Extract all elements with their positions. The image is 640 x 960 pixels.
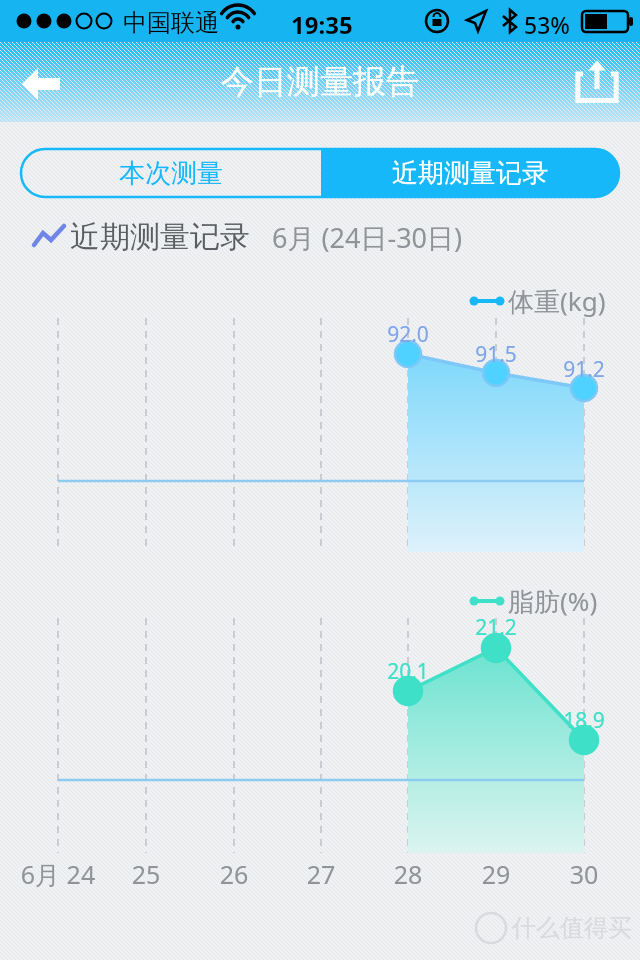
staticText: 91.2: [539, 355, 629, 384]
staticText: 29: [431, 857, 561, 891]
staticText: 体重(kg): [508, 283, 606, 319]
staticText: 91.5: [451, 340, 541, 369]
staticText: 27: [256, 857, 386, 891]
staticText: 28: [343, 857, 473, 891]
staticText: 本次测量: [119, 157, 223, 190]
staticText: 今日测量报告: [221, 61, 419, 103]
staticText: 近期测量记录: [392, 157, 548, 190]
button[interactable]: Back: [14, 56, 70, 112]
staticText: 中国联通: [123, 8, 219, 38]
button[interactable]: Share: [568, 53, 626, 111]
staticText: 53%: [524, 9, 570, 40]
staticText: 6月 (24日-30日): [272, 219, 463, 256]
button[interactable]: 本次测量: [21, 149, 321, 197]
staticText: 26: [169, 857, 299, 891]
staticText: 30: [519, 857, 640, 891]
staticText: 20.1: [363, 657, 453, 686]
staticText: 19:35: [291, 8, 353, 41]
staticText: 92.0: [363, 320, 453, 349]
button[interactable]: 近期测量记录: [321, 149, 619, 197]
staticText: 6月 24: [0, 857, 123, 891]
staticText: 21.2: [451, 613, 541, 642]
staticText: 什么值得买: [512, 913, 632, 943]
staticText: 18.9: [539, 706, 629, 735]
staticText: 近期测量记录: [70, 218, 250, 256]
staticText: 25: [81, 857, 211, 891]
staticText: 脂肪(%): [508, 583, 598, 619]
